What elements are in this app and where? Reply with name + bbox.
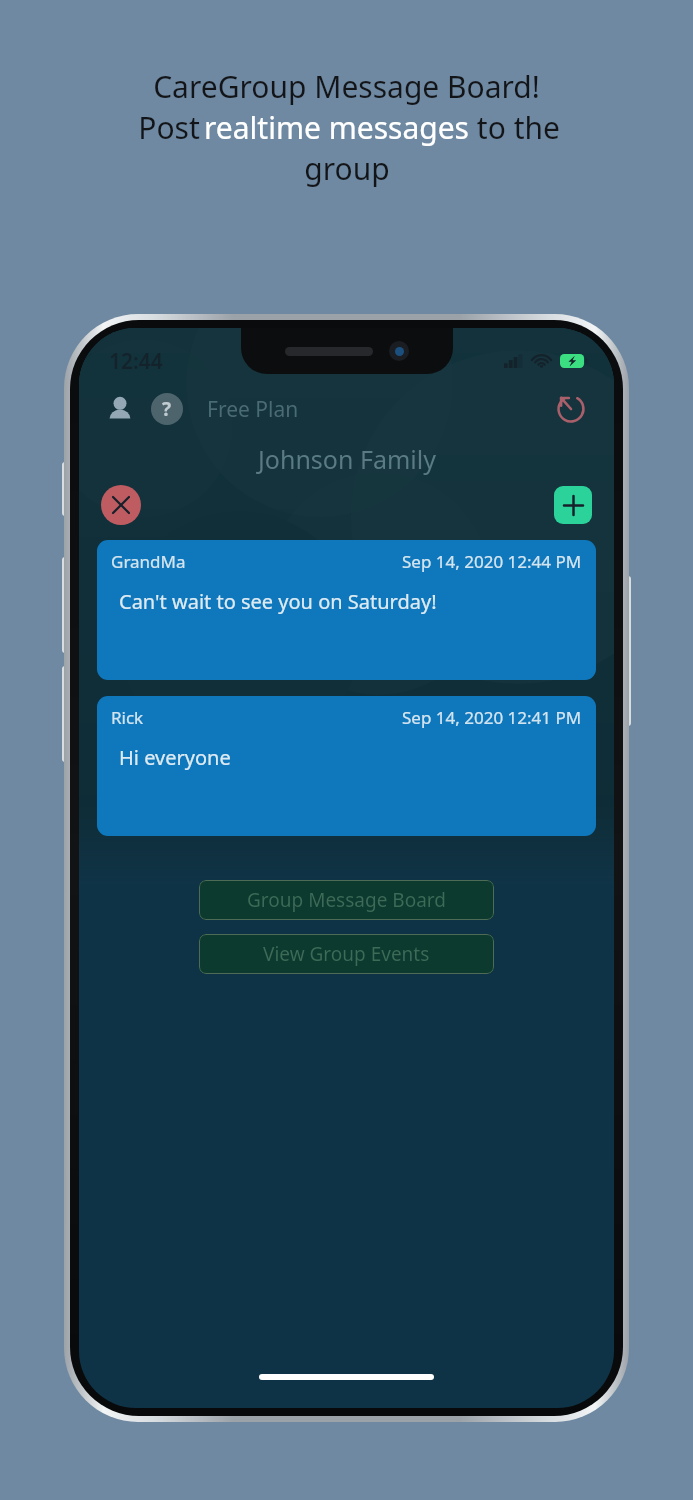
staticText: realtime messages bbox=[204, 107, 469, 148]
staticText: ? bbox=[162, 396, 172, 422]
button[interactable]: History bbox=[550, 388, 592, 430]
staticText: CareGroup Message Board! bbox=[153, 66, 540, 107]
staticText: Sep 14, 2020 12:41 PM bbox=[402, 706, 582, 729]
button[interactable]: Group Message Board bbox=[199, 880, 494, 920]
staticText: GrandMa bbox=[111, 550, 186, 573]
staticText: Sep 14, 2020 12:44 PM bbox=[402, 550, 582, 573]
staticText: Can't wait to see you on Saturday! bbox=[119, 588, 437, 615]
staticText: 12:44 bbox=[109, 347, 163, 376]
staticText: Post bbox=[134, 107, 204, 148]
button[interactable]: View Group Events bbox=[199, 934, 494, 974]
staticText: to the bbox=[469, 107, 560, 148]
button[interactable]: GrandMa bbox=[97, 540, 596, 680]
staticText: Johnson Family bbox=[258, 442, 436, 476]
staticText: View Group Events bbox=[263, 941, 430, 967]
button[interactable]: Free Plan bbox=[207, 395, 299, 424]
staticText: Group Message Board bbox=[247, 887, 446, 913]
staticText: Rick bbox=[111, 706, 144, 729]
button[interactable]: Add message bbox=[554, 486, 592, 524]
button[interactable]: Rick bbox=[97, 696, 596, 836]
button[interactable]: Profile bbox=[101, 390, 139, 428]
button[interactable]: Close bbox=[101, 485, 141, 525]
staticText: group bbox=[304, 148, 390, 189]
button[interactable]: Help bbox=[151, 393, 183, 425]
staticText: Hi everyone bbox=[119, 744, 231, 771]
